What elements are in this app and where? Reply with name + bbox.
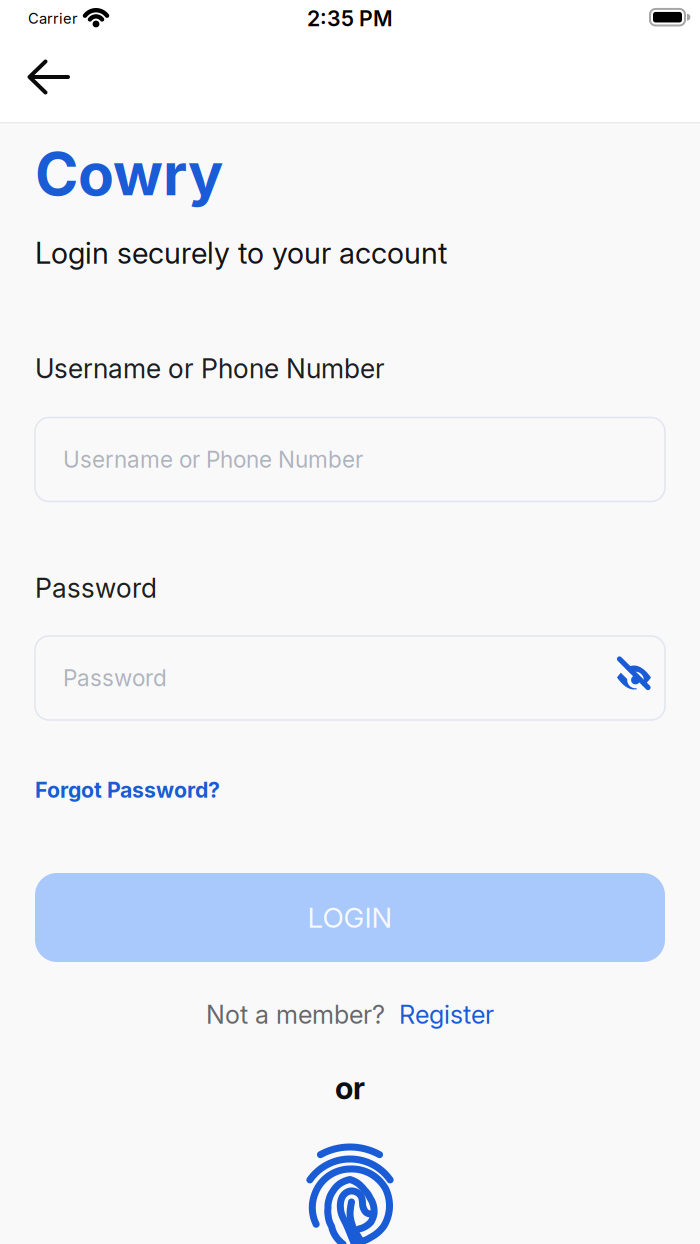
staticText: Username or Phone Number xyxy=(35,353,385,384)
staticText: Username or Phone Number xyxy=(63,446,363,473)
staticText: Password xyxy=(63,665,167,691)
button[interactable]: Forgot Password? xyxy=(35,777,220,803)
button[interactable]: Register xyxy=(399,1000,494,1029)
button[interactable]: Back xyxy=(27,59,71,95)
staticText: Forgot Password? xyxy=(35,777,220,803)
staticText: or xyxy=(335,1070,365,1106)
staticText: Carrier xyxy=(28,10,78,27)
staticText: Register xyxy=(399,1000,494,1029)
staticText: Cowry xyxy=(35,139,223,209)
staticText: Not a member? xyxy=(206,1000,385,1029)
staticText: LOGIN xyxy=(307,901,392,934)
button[interactable]: LOGIN xyxy=(35,873,665,962)
staticText: Login securely to your account xyxy=(35,236,447,270)
staticText: 2:35 PM xyxy=(307,6,393,31)
button[interactable]: Login with fingerprint xyxy=(290,1133,410,1244)
button[interactable]: Show password xyxy=(612,660,656,696)
staticText: Password xyxy=(35,572,157,604)
